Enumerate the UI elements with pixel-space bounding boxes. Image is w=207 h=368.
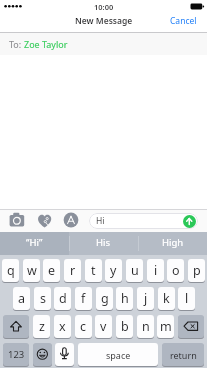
button[interactable]: f (75, 287, 92, 310)
button[interactable]: a (13, 287, 30, 310)
button[interactable] (3, 315, 29, 338)
button[interactable]: Hi (89, 213, 198, 229)
staticText: e (48, 262, 56, 279)
staticText: g (101, 290, 109, 307)
button[interactable]: To: (0, 33, 207, 55)
button[interactable]: Cancel (150, 13, 197, 29)
staticText: s (40, 290, 46, 307)
staticText: 123 (8, 348, 25, 361)
staticText: His (96, 236, 111, 249)
staticText: h (121, 290, 129, 307)
button[interactable]: High (138, 232, 207, 255)
staticText: o (172, 262, 180, 279)
button[interactable]: t (85, 259, 102, 282)
staticText: c (80, 318, 87, 335)
button[interactable]: j (137, 287, 154, 310)
staticText: 10:00 (94, 2, 114, 12)
button[interactable] (178, 315, 204, 338)
staticText: a (18, 290, 26, 307)
staticText: Hi (96, 215, 105, 227)
staticText: Cancel (170, 15, 197, 27)
button[interactable] (63, 212, 79, 228)
button[interactable] (183, 215, 196, 228)
button[interactable]: z (33, 315, 50, 338)
button[interactable]: o (167, 259, 184, 282)
button[interactable]: n (137, 315, 154, 338)
button[interactable]: p (188, 259, 205, 282)
staticText: k (163, 290, 170, 307)
button[interactable]: q (2, 259, 19, 282)
button[interactable]: c (75, 315, 92, 338)
button[interactable] (37, 213, 53, 229)
staticText: i (154, 262, 158, 279)
staticText: v (100, 318, 107, 335)
button[interactable]: d (54, 287, 71, 310)
staticText: b (121, 318, 129, 335)
button[interactable]: u (126, 259, 143, 282)
button[interactable]: 123 (3, 343, 29, 366)
button[interactable]: space (78, 343, 158, 366)
button[interactable]: e (43, 259, 60, 282)
staticText: “Hi” (26, 236, 43, 249)
staticText: Zoe Taylor (24, 38, 68, 50)
button[interactable]: k (158, 287, 175, 310)
button[interactable] (8, 211, 26, 229)
button[interactable]: l (178, 287, 195, 310)
staticText: l (185, 290, 189, 307)
button[interactable]: w (23, 259, 40, 282)
button[interactable]: r (64, 259, 81, 282)
staticText: u (131, 262, 139, 279)
staticText: n (142, 318, 150, 335)
button[interactable]: b (116, 315, 133, 338)
button[interactable]: y (105, 259, 122, 282)
button[interactable]: m (157, 315, 174, 338)
staticText: j (144, 290, 148, 307)
button[interactable] (55, 343, 74, 366)
button[interactable]: s (34, 287, 51, 310)
button[interactable]: “Hi” (0, 232, 69, 255)
staticText: New Message (75, 15, 133, 27)
staticText: q (7, 262, 15, 279)
button[interactable]: g (96, 287, 113, 310)
staticText: t (91, 262, 96, 279)
button[interactable]: v (95, 315, 112, 338)
staticText: space (106, 349, 131, 361)
staticText: return (170, 349, 197, 361)
staticText: f (81, 290, 86, 307)
staticText: w (27, 262, 37, 279)
staticText: y (110, 262, 117, 279)
button[interactable]: His (69, 232, 138, 255)
staticText: To: (9, 38, 24, 50)
staticText: d (59, 290, 67, 307)
button[interactable]: i (147, 259, 164, 282)
staticText: High (162, 236, 184, 249)
staticText: r (70, 262, 76, 279)
button[interactable]: return (162, 343, 204, 366)
button[interactable]: x (54, 315, 71, 338)
button[interactable]: h (116, 287, 133, 310)
staticText: p (193, 262, 201, 279)
staticText: x (59, 318, 66, 335)
staticText: z (39, 318, 45, 335)
staticText: m (160, 318, 172, 335)
button[interactable] (33, 343, 52, 366)
